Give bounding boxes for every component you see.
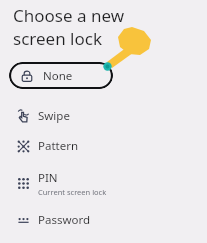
other: Swipe	[16, 109, 31, 124]
other: Pointer highlight	[0, 0, 207, 243]
other: Pattern	[16, 139, 31, 154]
button[interactable]: Swipe	[0, 103, 207, 129]
other: Password	[16, 213, 31, 228]
other: PIN	[16, 176, 31, 191]
button[interactable]: Pattern	[0, 133, 207, 159]
staticText: Current screen lock	[38, 187, 107, 197]
staticText: PIN	[38, 170, 58, 186]
staticText: Swipe	[38, 108, 70, 124]
staticText: None	[43, 68, 73, 84]
button[interactable]: PIN	[0, 168, 207, 198]
button[interactable]: Password	[0, 207, 207, 233]
button[interactable]: None	[9, 62, 113, 89]
staticText: Choose a new	[13, 4, 125, 27]
staticText: Pattern	[38, 138, 79, 154]
staticText: screen lock	[13, 27, 102, 50]
staticText: Password	[38, 212, 91, 228]
